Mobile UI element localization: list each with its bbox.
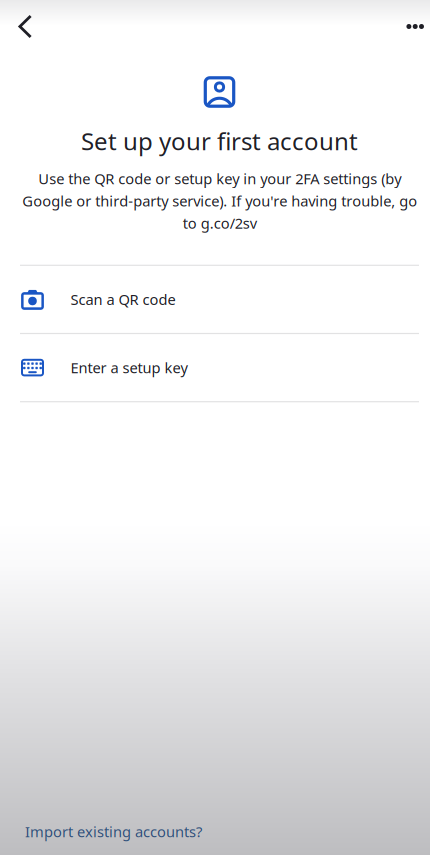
button[interactable]: Back (9, 4, 32, 48)
button[interactable]: Import existing accounts? (9, 808, 430, 855)
button[interactable]: Scan a QR code (9, 266, 430, 334)
staticText: Import existing accounts? (25, 822, 202, 841)
staticText: Use the QR code or setup key in your 2FA… (22, 169, 417, 233)
staticText: Enter a setup key (70, 358, 187, 377)
button[interactable]: Enter a setup key (9, 334, 430, 402)
button[interactable]: More options (380, 4, 424, 48)
staticText: Set up your first account (81, 125, 358, 157)
staticText: Scan a QR code (70, 290, 175, 309)
